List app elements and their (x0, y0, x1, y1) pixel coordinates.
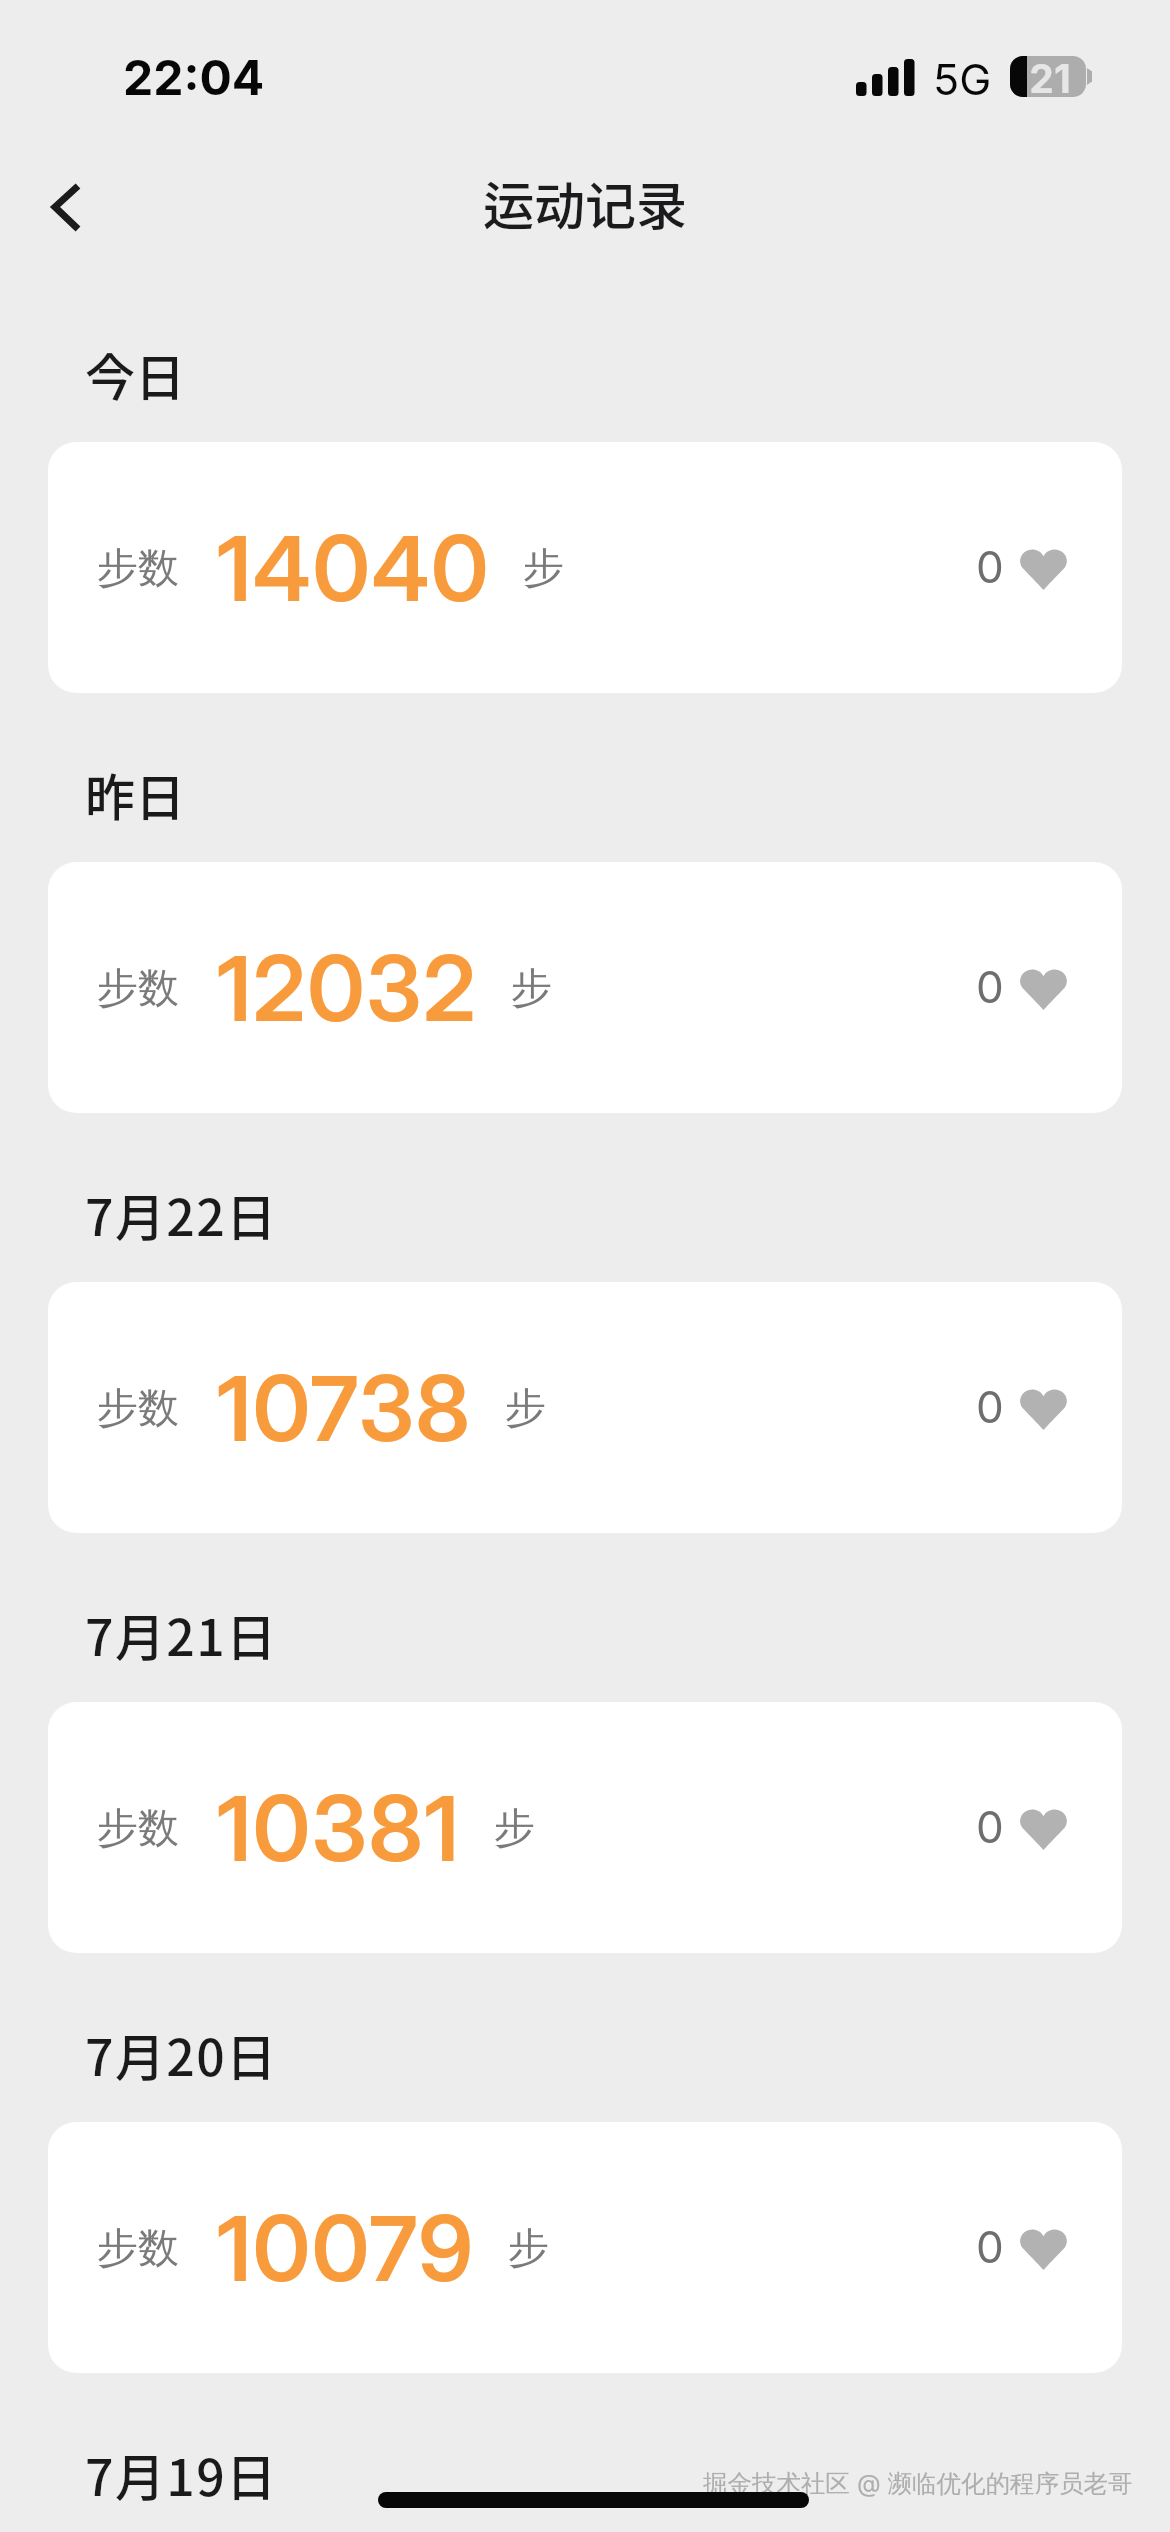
staticText: 运动记录 (0, 166, 1170, 240)
staticText: 步 (505, 1383, 546, 1435)
staticText: 步 (508, 2223, 549, 2275)
staticText: 0 (976, 1800, 1004, 1853)
staticText: 0 (976, 2220, 1004, 2273)
staticText: 10738 (217, 1354, 472, 1463)
button[interactable]: 步数 (48, 862, 1122, 1113)
staticText: 0 (976, 540, 1004, 593)
button[interactable]: 步数 (48, 2122, 1122, 2373)
staticText: 7月22日 (85, 1178, 278, 1250)
staticText: 0 (976, 960, 1004, 1013)
button[interactable]: Like (964, 1365, 1067, 1455)
staticText: 10381 (217, 1774, 461, 1883)
button[interactable]: 步数 (48, 442, 1122, 693)
button[interactable]: Like (964, 1785, 1067, 1875)
staticText: 昨日 (85, 758, 185, 830)
button[interactable]: Like (964, 2205, 1067, 2295)
staticText: 21 (1016, 55, 1084, 102)
staticText: 今日 (85, 338, 185, 410)
staticText: 7月19日 (85, 2438, 278, 2510)
staticText: 步数 (97, 2223, 179, 2275)
button[interactable]: Back (18, 162, 110, 252)
staticText: 0 (976, 1380, 1004, 1433)
staticText: 12032 (217, 934, 478, 1043)
staticText: 步数 (97, 963, 179, 1015)
staticText: 14040 (217, 514, 490, 623)
staticText: 7月20日 (85, 2018, 278, 2090)
button[interactable]: Like (964, 525, 1067, 615)
staticText: 7月21日 (85, 1598, 278, 1670)
staticText: 步 (523, 543, 564, 595)
button[interactable]: Like (964, 945, 1067, 1035)
staticText: 掘金技术社区 @ 濒临优化的程序员老哥 (703, 2468, 1133, 2499)
staticText: 步 (511, 963, 552, 1015)
staticText: 22:04 (123, 48, 265, 106)
staticText: 步数 (97, 1383, 179, 1435)
staticText: 步数 (97, 543, 179, 595)
button[interactable]: 步数 (48, 1702, 1122, 1953)
staticText: 步 (494, 1803, 535, 1855)
staticText: 10079 (217, 2194, 475, 2303)
button[interactable]: 步数 (48, 1282, 1122, 1533)
staticText: 步数 (97, 1803, 179, 1855)
staticText: 5G (933, 53, 992, 105)
